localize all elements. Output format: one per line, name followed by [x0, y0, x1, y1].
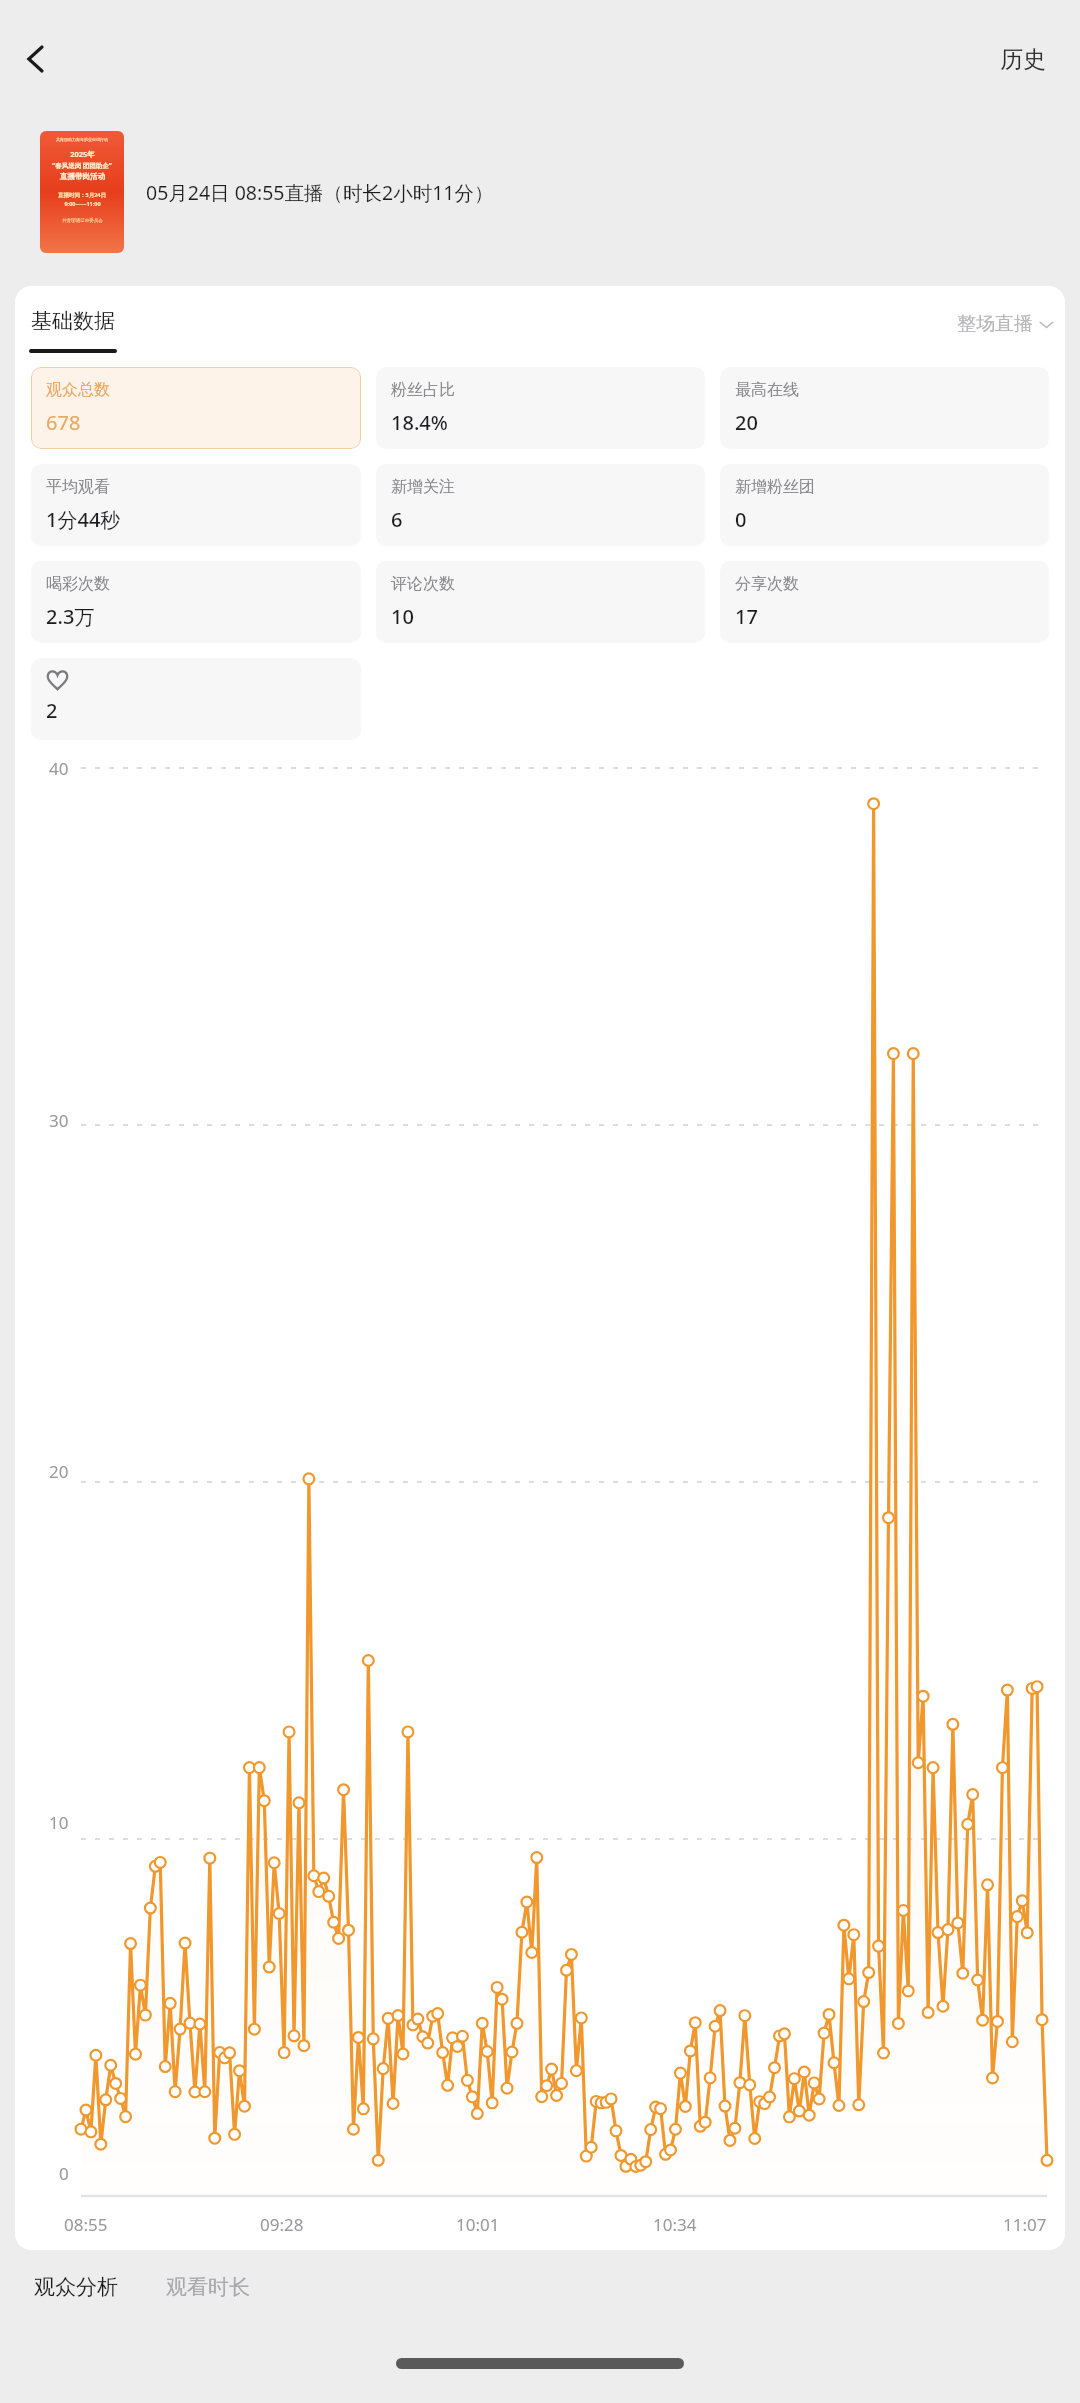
staticText: 6 — [391, 506, 403, 533]
staticText: 18.4% — [391, 409, 448, 436]
staticText: 30 — [49, 1109, 69, 1132]
staticText: 粉丝占比 — [391, 380, 455, 400]
button[interactable]: 新增粉丝团 — [720, 464, 1049, 546]
staticText: 11:07 — [1003, 2213, 1047, 2236]
staticText: 共青团通辽市委员会 — [62, 218, 103, 224]
staticText: 直播带岗活动 — [60, 172, 105, 181]
button[interactable]: 评论次数 — [376, 561, 705, 643]
button[interactable]: 直播封面 — [40, 131, 124, 253]
staticText: 观众分析 — [34, 2274, 118, 2300]
staticText: 05月24日 08:55直播（时长2小时11分） — [146, 179, 494, 206]
staticText: 10 — [49, 1811, 69, 1834]
button[interactable]: 观看时长 — [162, 2270, 254, 2304]
staticText: 最高在线 — [735, 380, 799, 400]
staticText: 共青团助力青年就业促进行动 — [56, 137, 108, 142]
staticText: 0 — [735, 506, 747, 533]
staticText: 10:34 — [653, 2213, 697, 2236]
button[interactable]: Back — [5, 28, 67, 90]
staticText: 0 — [59, 2162, 69, 2185]
staticText: 2025年 — [70, 149, 95, 159]
staticText: 基础数据 — [31, 308, 115, 334]
staticText: 40 — [49, 757, 69, 780]
button[interactable]: 基础数据 — [26, 308, 120, 353]
button[interactable]: 新增关注 — [376, 464, 705, 546]
staticText: 整场直播 — [957, 312, 1033, 336]
button[interactable]: 整场直播 — [957, 312, 1054, 336]
staticText: 17 — [735, 603, 758, 630]
button[interactable]: 粉丝占比 — [376, 367, 705, 449]
staticText: 20 — [735, 409, 758, 436]
button[interactable]: 分享次数 — [720, 561, 1049, 643]
staticText: 观看时长 — [166, 2274, 250, 2300]
staticText: 新增粉丝团 — [735, 477, 815, 497]
staticText: 09:28 — [260, 2213, 304, 2236]
staticText: 分享次数 — [735, 574, 799, 594]
staticText: 新增关注 — [391, 477, 455, 497]
staticText: 平均观看 — [46, 477, 110, 497]
button[interactable]: 观众分析 — [30, 2270, 122, 2304]
staticText: 9:00——11:00 — [64, 200, 101, 207]
staticText: 1分44秒 — [46, 506, 121, 533]
staticText: 评论次数 — [391, 574, 455, 594]
staticText: 10 — [391, 603, 414, 630]
button[interactable]: 最高在线 — [720, 367, 1049, 449]
staticText: 20 — [49, 1460, 69, 1483]
staticText: 喝彩次数 — [46, 574, 110, 594]
button[interactable]: 点赞数 2 — [31, 658, 361, 740]
button[interactable]: 平均观看 — [31, 464, 361, 546]
staticText: 直播时间：5月24日 — [58, 191, 106, 199]
staticText: 历史 — [1000, 45, 1046, 74]
staticText: “春风送岗 团团助企” — [52, 161, 112, 170]
button[interactable]: 观众总数 — [31, 367, 361, 449]
staticText: 678 — [46, 409, 81, 436]
staticText: 08:55 — [64, 2213, 108, 2236]
staticText: 2 — [46, 697, 58, 724]
button[interactable]: 喝彩次数 — [31, 561, 361, 643]
staticText: 2.3万 — [46, 603, 95, 630]
staticText: 观众总数 — [46, 380, 110, 400]
staticText: 10:01 — [456, 2213, 500, 2236]
